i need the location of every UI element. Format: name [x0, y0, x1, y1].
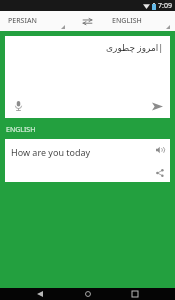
button[interactable]: Back	[32, 288, 48, 300]
staticText: How are you today	[11, 146, 91, 158]
staticText: 7:09	[158, 1, 172, 11]
button[interactable]: Voice input	[9, 97, 27, 115]
button[interactable]: Share	[152, 165, 167, 180]
button[interactable]: Home	[80, 288, 96, 300]
button[interactable]: Recent apps	[127, 288, 143, 300]
staticText: امروز چطوری|	[106, 41, 164, 53]
button[interactable]: PERSIAN	[0, 11, 70, 31]
button[interactable]: Translate	[148, 97, 166, 115]
button[interactable]: امروز چطوری|	[5, 36, 170, 118]
button[interactable]: Listen	[152, 142, 167, 157]
staticText: PERSIAN	[8, 16, 37, 26]
button[interactable]: ENGLISH	[104, 11, 175, 31]
button[interactable]: Swap languages	[70, 11, 104, 31]
staticText: ENGLISH	[112, 16, 142, 26]
button[interactable]: How are you today	[5, 139, 170, 182]
staticText: ENGLISH	[6, 125, 36, 135]
